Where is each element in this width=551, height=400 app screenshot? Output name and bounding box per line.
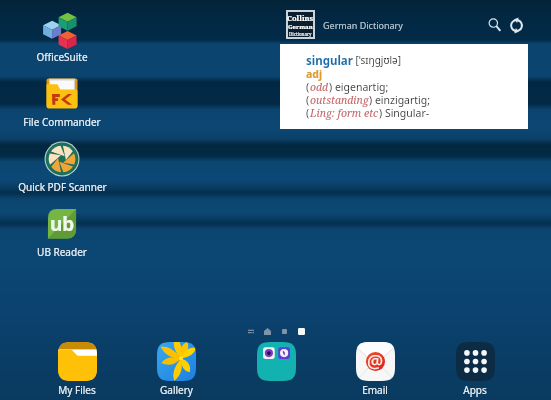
button[interactable]: Page 4, current [295,325,308,338]
staticText: ) eigenartig; [329,80,389,94]
staticText: ) Singular- [379,106,430,120]
button[interactable]: OfficeSuite [28,6,96,71]
button[interactable] [245,338,307,400]
staticText: singular [306,53,353,69]
button[interactable]: Page 3 [278,325,291,338]
staticText: ub [50,211,75,237]
staticText: Collins [287,13,314,23]
staticText: German [288,23,313,31]
button[interactable]: singular [280,44,528,129]
staticText: Apps [463,383,487,397]
staticText: Dictionary [289,31,312,37]
staticText: My Files [58,383,96,397]
button[interactable]: @ [344,338,406,400]
staticText: @ [367,349,384,374]
button[interactable]: My Files [46,338,108,400]
staticText: File Commander [23,115,101,129]
staticText: Ling: form etc [310,106,379,120]
staticText: ) einzigartig; [369,93,431,107]
button[interactable]: File Commander [28,71,96,136]
staticText: ( [306,80,310,94]
staticText: Gallery [160,383,193,397]
button[interactable]: Home page [261,325,274,338]
staticText: Email [362,383,388,397]
staticText: Quick PDF Scanner [18,180,107,194]
button[interactable]: Briefing feed [244,325,257,338]
staticText: ( [306,106,310,120]
staticText: UB Reader [37,245,87,259]
staticText: [ˈsɪŋgjʊlə] [353,53,401,67]
staticText: German Dictionary [323,19,403,31]
button[interactable]: Search [485,15,504,34]
staticText: adj [306,67,323,81]
button[interactable]: Apps [444,338,506,400]
staticText: outstanding [310,93,369,107]
button[interactable]: ub [28,201,96,266]
button[interactable]: Gallery [145,338,207,400]
staticText: OfficeSuite [36,50,88,64]
staticText: odd [310,80,329,94]
staticText: ( [306,93,310,107]
button[interactable]: Quick PDF Scanner [28,136,96,201]
button[interactable]: Refresh [504,13,528,37]
